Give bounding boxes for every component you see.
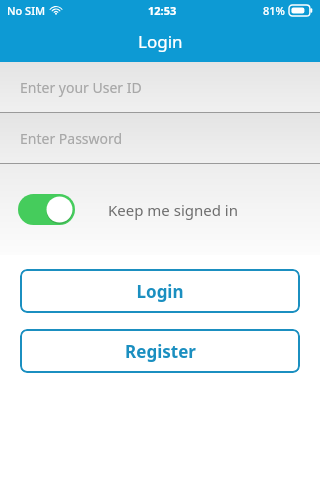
staticText: 81% bbox=[263, 3, 285, 18]
staticText: Login bbox=[138, 30, 183, 53]
staticText: Register bbox=[125, 340, 196, 363]
staticText: Login bbox=[136, 280, 184, 303]
staticText: Keep me signed in bbox=[108, 200, 238, 220]
button[interactable]: Login bbox=[20, 269, 300, 313]
button[interactable]: Enter Password bbox=[0, 113, 320, 163]
button[interactable]: Enter your User ID bbox=[0, 62, 320, 112]
staticText: Enter your User ID bbox=[20, 78, 142, 97]
button[interactable]: Keep me signed in toggle bbox=[18, 194, 75, 225]
button[interactable]: Register bbox=[20, 329, 300, 373]
staticText: No SIM bbox=[7, 3, 46, 18]
staticText: 12:53 bbox=[148, 3, 177, 18]
staticText: Enter Password bbox=[20, 129, 123, 148]
